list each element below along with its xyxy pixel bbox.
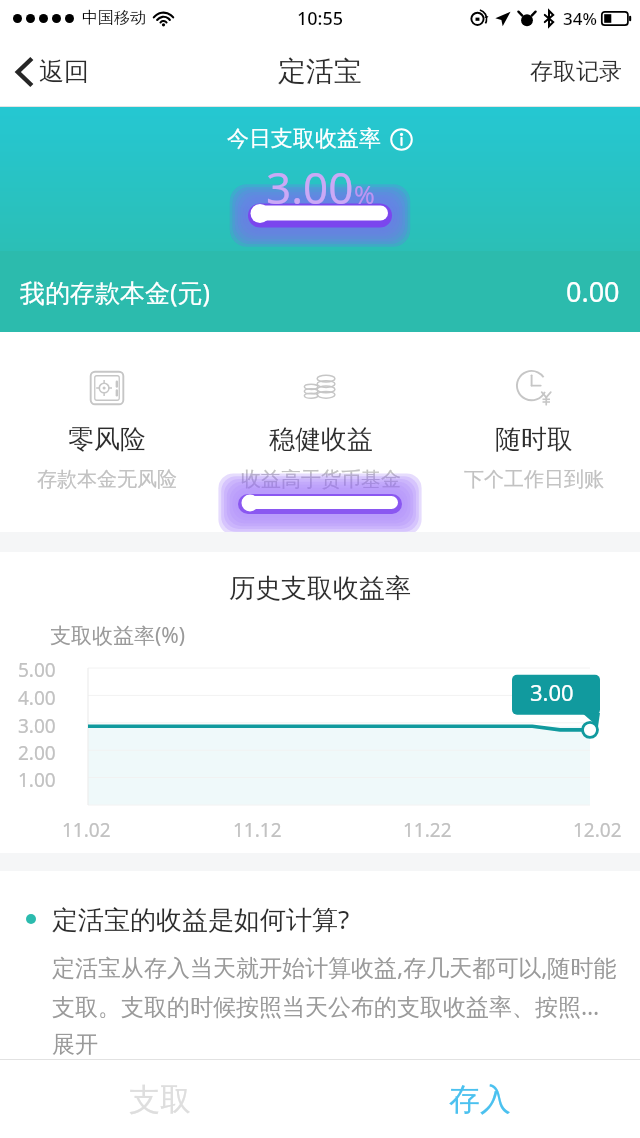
staticText: 支取 [129,1080,191,1119]
staticText: 5.00 [18,657,56,683]
staticText: 支取收益率(%) [50,621,186,650]
staticText: 今日支取收益率 [227,125,381,153]
staticText: 定活宝的收益是如何计算? [52,901,350,937]
button[interactable]: 稳健收益 [214,362,427,494]
staticText: 11.12 [233,817,282,843]
staticText: 随时取 [495,423,573,456]
staticText: 返回 [39,56,89,87]
staticText: 定活宝 [278,54,362,89]
staticText: 34% [563,7,597,30]
staticText: 存款本金无风险 [37,467,177,492]
staticText: 存取记录 [530,57,622,86]
button[interactable]: 存入 [320,1060,640,1138]
staticText: 0.00 [566,273,620,310]
button[interactable]: 我的存款本金(元) [0,251,640,332]
staticText: 4.00 [18,685,56,711]
button[interactable]: 定活宝的收益是如何计算? [0,901,640,937]
staticText: 11.02 [62,817,111,843]
staticText: 3.00 [266,157,354,217]
staticText: 零风险 [68,423,146,456]
button[interactable]: 支取 [0,1060,320,1138]
button[interactable]: 今日支取收益率 [219,123,421,155]
staticText: 定活宝从存入当天就开始计算收益,存几天都可以,随时能支取。支取的时候按照当天公布… [52,951,622,1059]
button[interactable]: 存取记录 [512,45,640,98]
staticText: 12.02 [573,817,622,843]
staticText: 3.00 [530,677,574,707]
staticText: 我的存款本金(元) [20,275,211,309]
staticText: 1.00 [18,767,56,793]
button[interactable]: 零风险 [0,362,214,494]
staticText: 11.22 [403,817,452,843]
staticText: 收益高于货币基金 [241,467,401,492]
button[interactable]: 返回 [0,48,103,95]
staticText: 3.00 [18,713,56,739]
staticText: 下个工作日到账 [464,467,604,492]
staticText: 历史支取收益率 [0,572,640,605]
staticText: % [354,177,375,211]
staticText: 2.00 [18,740,56,766]
button[interactable]: 随时取 [427,362,640,494]
staticText: 10:55 [297,6,344,31]
staticText: 存入 [449,1080,511,1119]
staticText: 中国移动 [82,8,146,28]
staticText: 稳健收益 [269,423,373,456]
other: 收益率说明 [390,128,413,151]
